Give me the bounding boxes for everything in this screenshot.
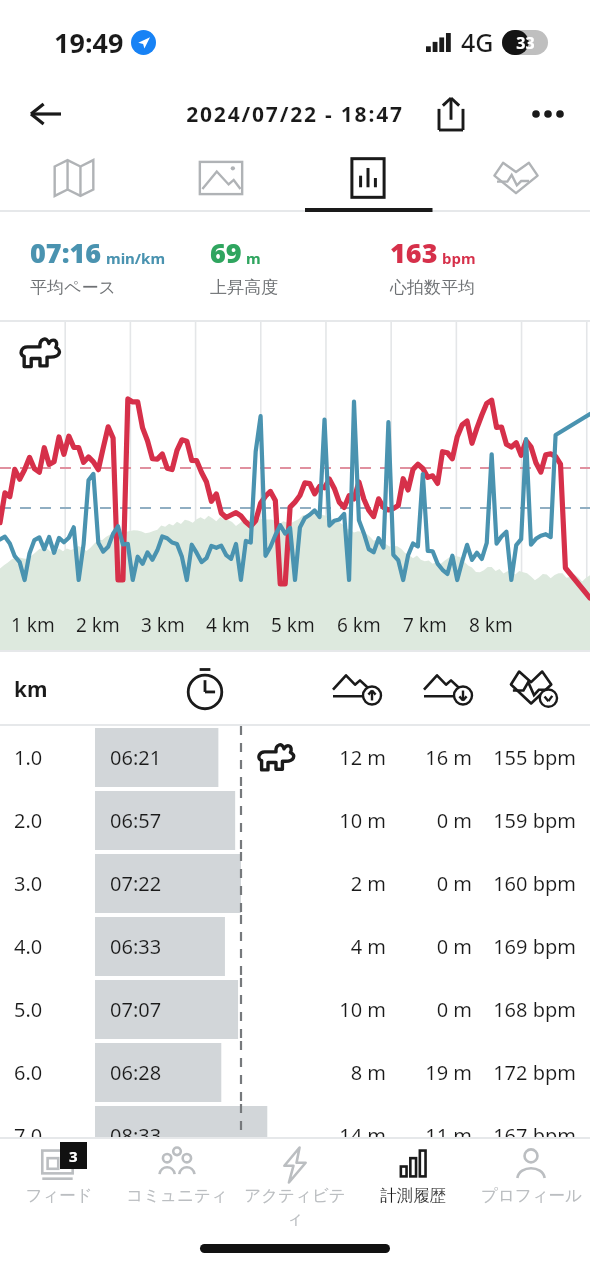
button[interactable]: Photos <box>147 144 294 212</box>
staticText: 2024/07/22 - 18:47 <box>186 100 404 129</box>
staticText: 4G <box>461 25 494 59</box>
staticText: 4 m <box>320 933 386 960</box>
staticText: 69 <box>210 234 242 271</box>
staticText: bpm <box>442 248 476 268</box>
button[interactable]: Back <box>18 86 74 142</box>
staticText: 159 bpm <box>482 807 576 834</box>
button[interactable]: Charts <box>294 144 442 212</box>
staticText: 7.0 <box>14 1122 43 1149</box>
staticText: m <box>246 248 261 268</box>
button[interactable]: 2.0 <box>0 789 590 852</box>
staticText: 11 m <box>406 1122 472 1149</box>
staticText: 6 km <box>337 612 381 638</box>
staticText: 2 m <box>320 870 386 897</box>
staticText: 06:57 <box>110 807 162 834</box>
button[interactable]: Map <box>0 144 147 212</box>
button[interactable]: Heart rate <box>442 144 590 212</box>
staticText: 1.0 <box>14 744 43 771</box>
button[interactable]: 3 <box>0 1140 118 1228</box>
staticText: 06:28 <box>110 1059 162 1086</box>
staticText: 3.0 <box>14 870 43 897</box>
staticText: 167 bpm <box>482 1122 576 1149</box>
staticText: 168 bpm <box>482 996 576 1023</box>
staticText: 7 km <box>403 612 447 638</box>
staticText: 07:07 <box>110 996 162 1023</box>
staticText: 2.0 <box>14 807 43 834</box>
staticText: 10 m <box>320 807 386 834</box>
staticText: min/km <box>106 248 166 268</box>
staticText: 14 m <box>320 1122 386 1149</box>
staticText: コミュニティ <box>126 1185 228 1206</box>
button[interactable]: 4.0 <box>0 915 590 978</box>
button[interactable]: プロフィール <box>472 1140 590 1228</box>
staticText: 8 m <box>320 1059 386 1086</box>
staticText: 計測履歴 <box>380 1185 446 1206</box>
staticText: 0 m <box>406 933 472 960</box>
staticText: 4 km <box>206 612 250 638</box>
staticText: 169 bpm <box>482 933 576 960</box>
button[interactable]: More options <box>520 86 576 142</box>
staticText: 5 km <box>271 612 315 638</box>
staticText: 06:21 <box>110 744 162 771</box>
staticText: 07:16 <box>30 234 102 271</box>
staticText: 155 bpm <box>482 744 576 771</box>
staticText: 平均ペース <box>30 277 116 298</box>
staticText: フィード <box>25 1185 93 1206</box>
button[interactable]: 6.0 <box>0 1041 590 1104</box>
staticText: 3 <box>69 1146 78 1166</box>
staticText: 0 m <box>406 807 472 834</box>
staticText: 上昇高度 <box>210 277 278 298</box>
staticText: 2 km <box>76 612 120 638</box>
staticText: 0 m <box>406 870 472 897</box>
button[interactable]: 7.0 <box>0 1104 590 1167</box>
staticText: 163 <box>390 234 438 271</box>
staticText: アクティビティ <box>236 1185 354 1228</box>
staticText: 19 m <box>406 1059 472 1086</box>
staticText: 06:33 <box>110 933 162 960</box>
staticText: 33 <box>516 32 535 54</box>
button[interactable]: 1.0 <box>0 726 590 789</box>
button[interactable]: アクティビティ <box>236 1140 354 1228</box>
button[interactable]: 5.0 <box>0 978 590 1041</box>
staticText: プロフィール <box>481 1185 582 1206</box>
staticText: 8 km <box>469 612 513 638</box>
staticText: 0 m <box>406 996 472 1023</box>
staticText: 1 km <box>11 612 55 638</box>
staticText: 5.0 <box>14 996 43 1023</box>
button[interactable]: 計測履歴 <box>354 1140 472 1228</box>
staticText: 172 bpm <box>482 1059 576 1086</box>
staticText: 10 m <box>320 996 386 1023</box>
staticText: 心拍数平均 <box>390 277 475 298</box>
staticText: 16 m <box>406 744 472 771</box>
button[interactable]: 3.0 <box>0 852 590 915</box>
button[interactable]: コミュニティ <box>118 1140 236 1228</box>
staticText: 07:22 <box>110 870 162 897</box>
staticText: 6.0 <box>14 1059 43 1086</box>
staticText: 160 bpm <box>482 870 576 897</box>
staticText: 12 m <box>320 744 386 771</box>
staticText: km <box>14 675 48 704</box>
staticText: 08:33 <box>110 1122 162 1149</box>
staticText: 4.0 <box>14 933 43 960</box>
staticText: 19:49 <box>54 24 124 61</box>
button[interactable]: Share <box>424 87 478 141</box>
staticText: 3 km <box>141 612 185 638</box>
